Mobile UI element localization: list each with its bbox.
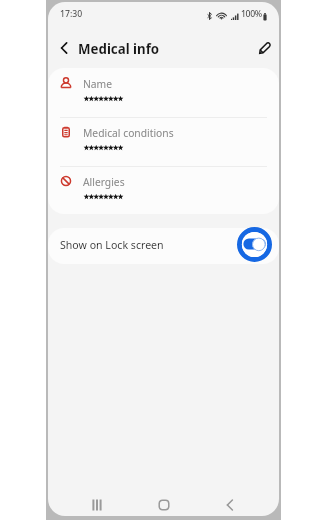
button[interactable]: Name bbox=[48, 68, 279, 117]
staticText: 17:30 bbox=[60, 8, 83, 20]
button[interactable]: Home bbox=[153, 494, 175, 516]
staticText: Medical info bbox=[78, 40, 160, 58]
staticText: 100% bbox=[241, 8, 262, 20]
staticText: Medical conditions bbox=[83, 126, 174, 140]
button[interactable]: Allergies bbox=[48, 166, 279, 214]
staticText: Name bbox=[83, 77, 113, 91]
button[interactable]: Edit bbox=[251, 34, 279, 62]
button[interactable]: Show on Lock screen bbox=[48, 228, 279, 264]
staticText: Allergies bbox=[83, 175, 125, 189]
button[interactable]: Navigate up bbox=[50, 34, 78, 62]
button[interactable]: Recents bbox=[86, 494, 108, 516]
staticText: Show on Lock screen bbox=[60, 238, 164, 252]
button[interactable]: Medical conditions bbox=[48, 117, 279, 166]
button[interactable]: Back bbox=[219, 494, 241, 516]
